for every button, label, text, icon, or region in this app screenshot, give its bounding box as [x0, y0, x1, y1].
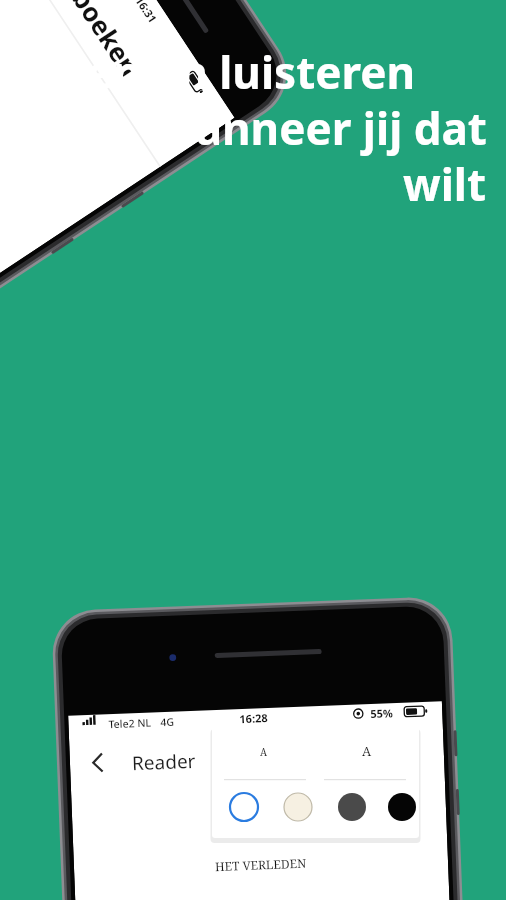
button[interactable]: lezen en luisteren wanneer jij dat wilt — [0, 0, 506, 900]
